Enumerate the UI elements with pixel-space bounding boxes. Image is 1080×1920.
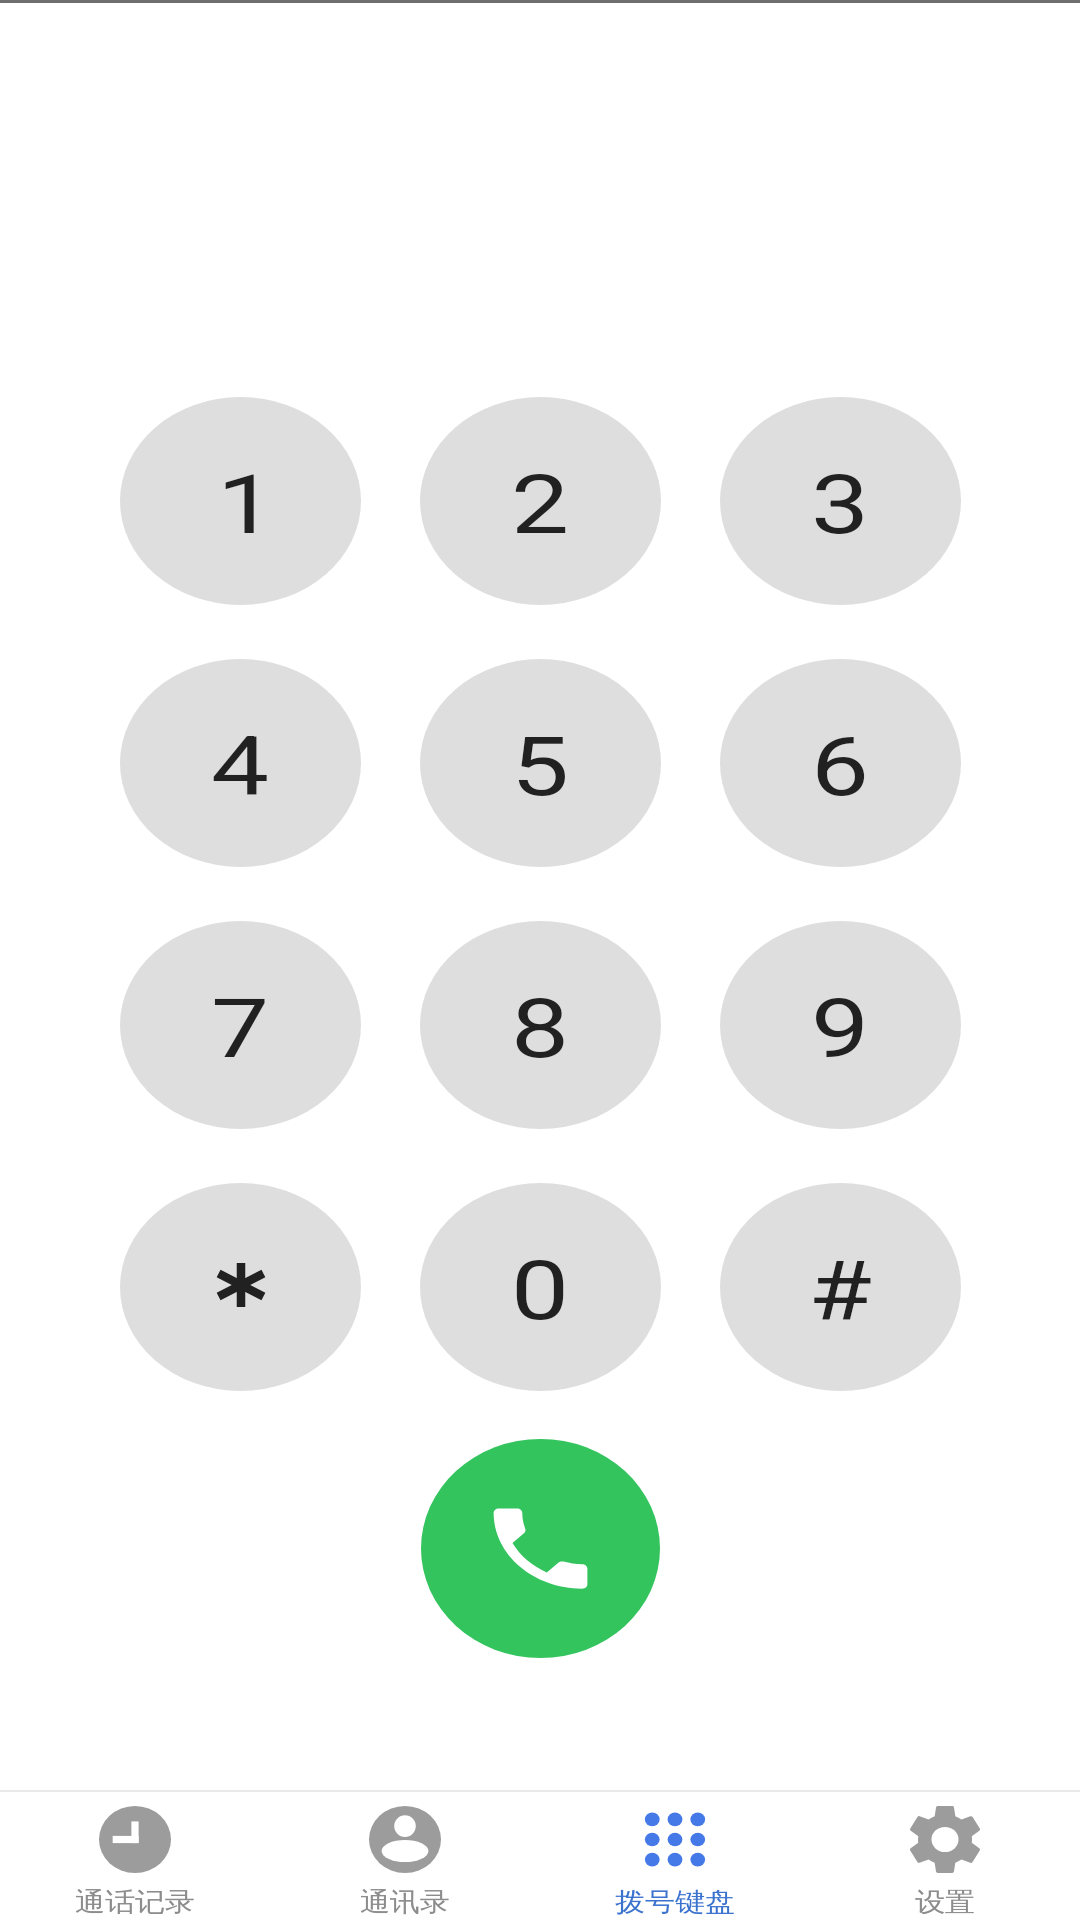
button[interactable]: 通话记录 xyxy=(0,1792,270,1920)
staticText: 9 xyxy=(811,981,870,1077)
button[interactable]: 设置 xyxy=(810,1792,1080,1920)
staticText: 8 xyxy=(511,981,570,1077)
button[interactable]: 2 xyxy=(420,397,661,605)
button[interactable]: 3 xyxy=(720,397,961,605)
button[interactable]: Call xyxy=(421,1439,660,1658)
button[interactable]: 9 xyxy=(720,921,961,1129)
button[interactable]: 4 xyxy=(120,659,361,867)
staticText: # xyxy=(808,1243,873,1339)
button[interactable] xyxy=(120,1183,361,1391)
staticText: 0 xyxy=(511,1243,570,1339)
button[interactable]: 0 xyxy=(420,1183,661,1391)
staticText: 7 xyxy=(211,981,270,1077)
staticText: 拨号键盘 xyxy=(615,1885,735,1919)
button[interactable]: 8 xyxy=(420,921,661,1129)
button[interactable]: 通讯录 xyxy=(270,1792,540,1920)
button[interactable]: 拨号键盘 xyxy=(540,1792,810,1920)
button[interactable]: 1 xyxy=(120,397,361,605)
staticText: 2 xyxy=(511,457,570,553)
button[interactable]: # xyxy=(720,1183,961,1391)
staticText: 设置 xyxy=(915,1885,975,1919)
button[interactable]: 6 xyxy=(720,659,961,867)
staticText: 通话记录 xyxy=(75,1885,195,1919)
staticText: 6 xyxy=(811,719,870,815)
staticText: 3 xyxy=(811,457,870,553)
button[interactable]: 5 xyxy=(420,659,661,867)
button[interactable]: 7 xyxy=(120,921,361,1129)
staticText: 5 xyxy=(511,719,570,815)
staticText: 4 xyxy=(211,719,270,815)
staticText: 通讯录 xyxy=(360,1885,450,1919)
staticText: 1 xyxy=(217,457,276,553)
